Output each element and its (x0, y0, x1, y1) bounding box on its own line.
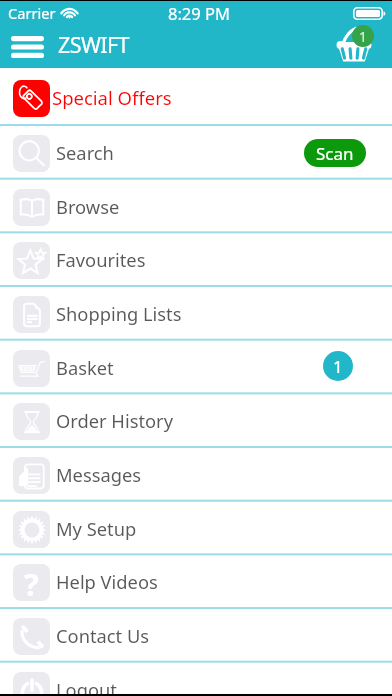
button[interactable]: Open navigation menu (5, 25, 49, 69)
button[interactable]: Shopping Lists (0, 286, 392, 340)
staticText: Order History (56, 408, 173, 433)
staticText: Help Videos (56, 569, 158, 594)
staticText: My Setup (56, 516, 137, 541)
button[interactable]: Favourites (0, 232, 392, 286)
staticText: Messages (56, 462, 142, 487)
staticText: 1 (333, 355, 343, 378)
button[interactable]: Basket (331, 24, 377, 68)
staticText: Scan (316, 142, 354, 165)
button[interactable]: Basket (0, 340, 392, 394)
staticText: Favourites (56, 247, 146, 272)
staticText: Browse (56, 194, 120, 219)
staticText: 8:29 PM (168, 2, 230, 24)
staticText: Contact Us (56, 623, 150, 648)
button[interactable]: My Setup (0, 501, 392, 555)
button[interactable]: ? (0, 554, 392, 608)
staticText: Search (56, 140, 114, 165)
button[interactable]: Order History (0, 393, 392, 447)
staticText: ZSWIFT (58, 30, 129, 59)
staticText: Carrier (8, 3, 56, 23)
staticText: Logout (56, 677, 117, 696)
staticText: 1 (359, 27, 368, 46)
staticText: Special Offers (52, 85, 172, 110)
button[interactable]: Search (0, 125, 392, 179)
button[interactable]: Contact Us (0, 608, 392, 662)
button[interactable]: Browse (0, 179, 392, 233)
staticText: Shopping Lists (56, 301, 182, 326)
button[interactable]: Scan (304, 139, 366, 167)
button[interactable]: Messages (0, 447, 392, 501)
staticText: Basket (56, 355, 114, 380)
button[interactable]: Special Offers (0, 68, 392, 125)
staticText: ? (24, 564, 39, 600)
button[interactable]: Logout (0, 662, 392, 696)
